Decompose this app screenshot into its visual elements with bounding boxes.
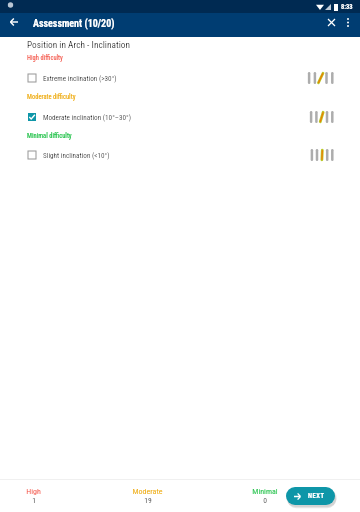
other: Inclination [307,111,333,123]
staticText: 8:33 [341,3,353,11]
button[interactable]: Slight inclination (<10°) [0,145,360,164]
button[interactable]: Moderate inclination (10°–30°) [0,107,360,126]
staticText: 1 [32,496,36,505]
staticText: Moderate inclination (10°–30°) [43,113,132,121]
button[interactable]: Back [6,14,22,30]
button[interactable]: Close [323,14,339,30]
other: Inclination [307,72,333,84]
staticText: Assessment (10/20) [33,18,115,30]
staticText: Slight inclination (<10°) [43,151,110,159]
staticText: High difficulty [27,54,63,62]
staticText: Position in Arch - Inclination [27,39,130,50]
staticText: Minimal difficulty [27,132,72,140]
button[interactable]: Extreme inclination (>30°) [0,68,360,87]
staticText: Minimal [252,487,278,496]
button[interactable]: More options [340,14,356,30]
staticText: Moderate difficulty [27,93,76,101]
staticText: 19 [144,496,152,505]
staticText: NEXT [308,492,325,500]
staticText: 0 [263,496,267,505]
other: Inclination [307,149,333,161]
staticText: Moderate [132,487,163,496]
staticText: Extreme inclination (>30°) [43,74,117,82]
button[interactable]: NEXT [286,487,335,505]
staticText: High [26,487,41,496]
